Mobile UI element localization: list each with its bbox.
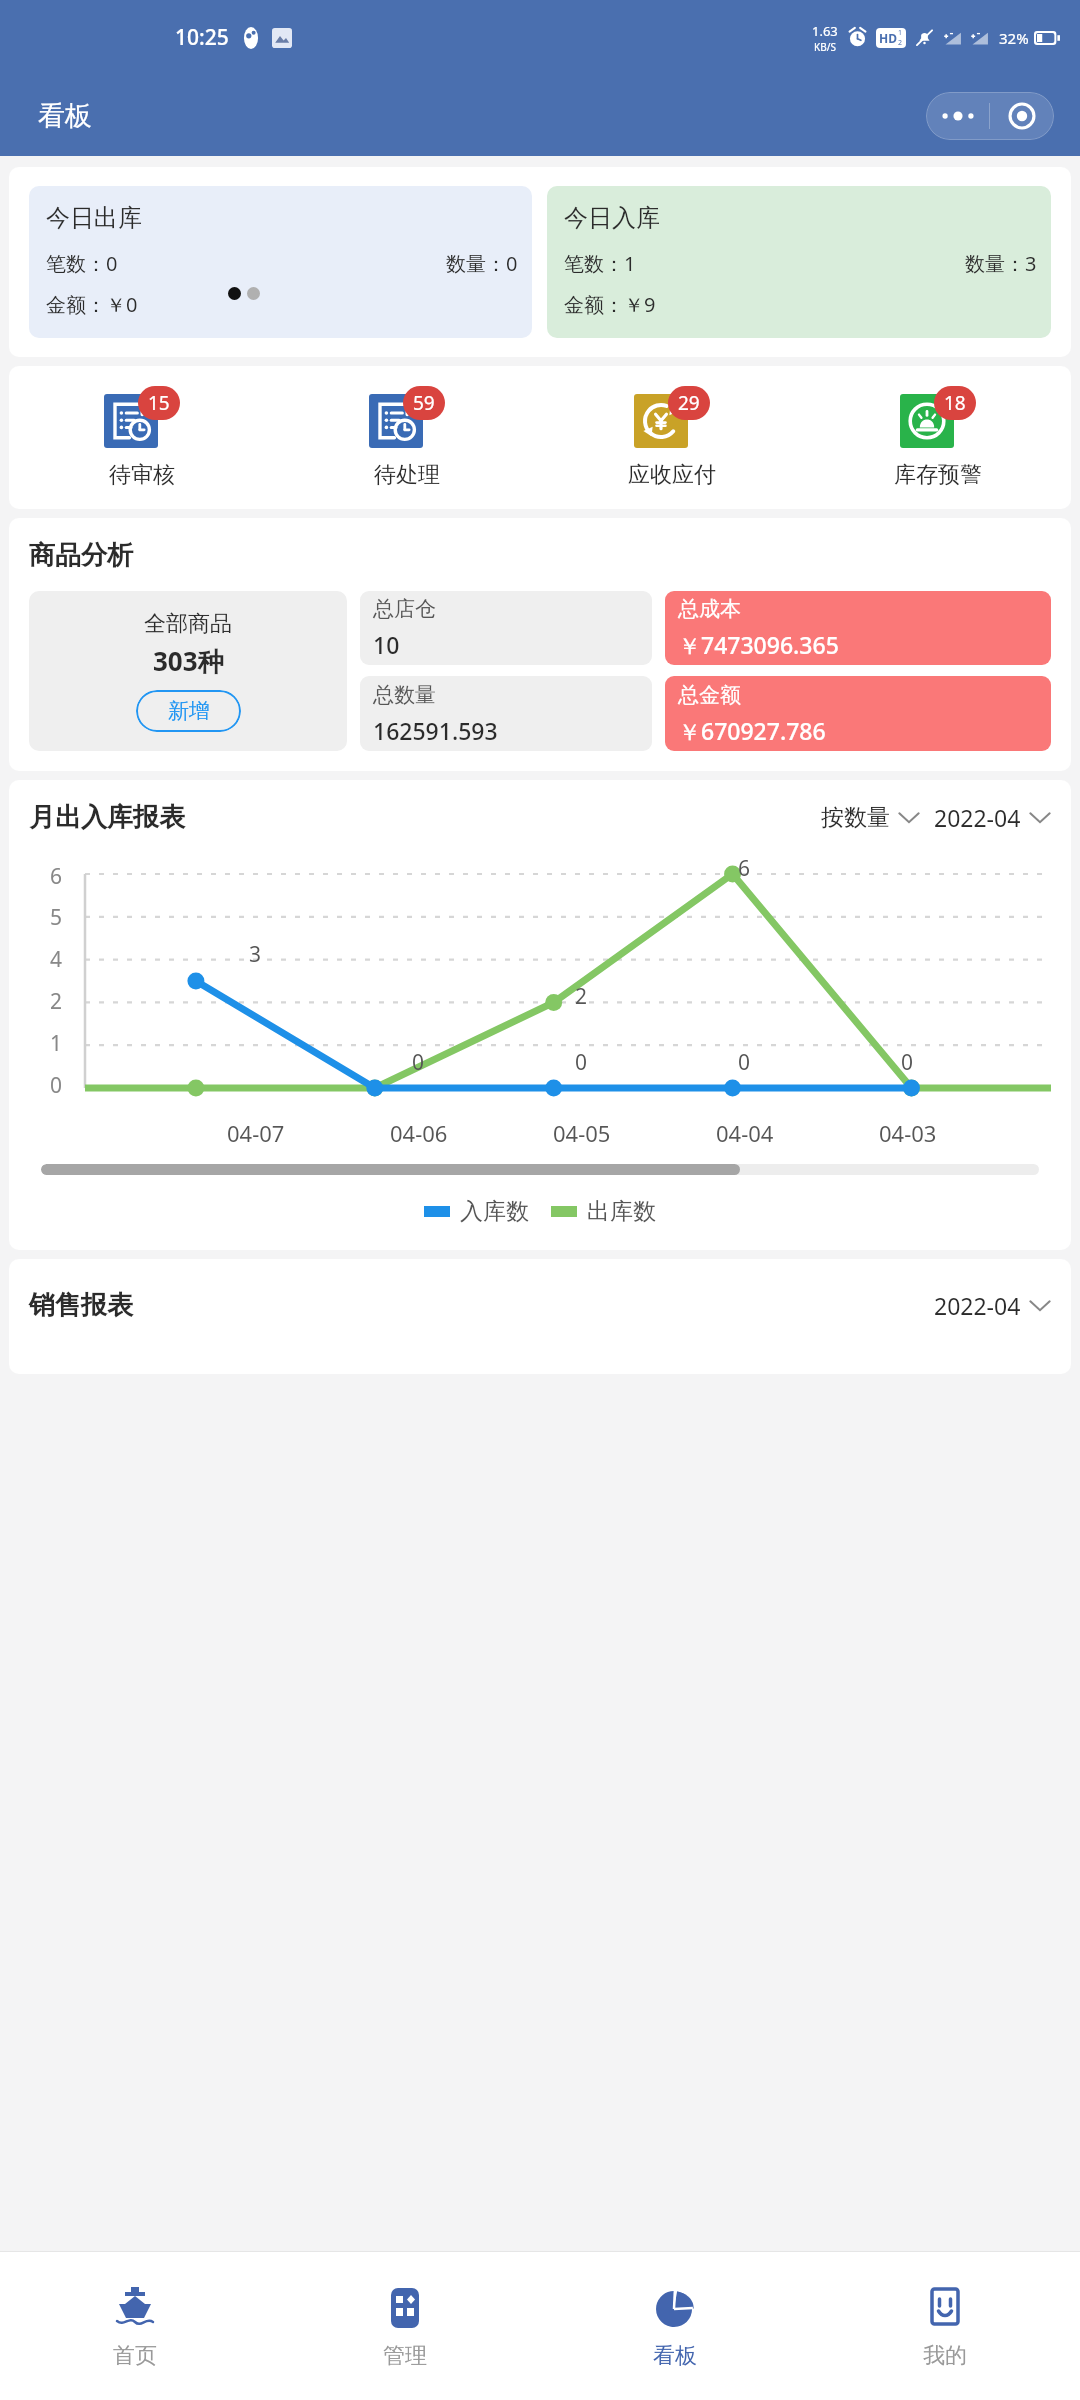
staticText: 04-04 (716, 1118, 774, 1148)
staticText: 看板 (653, 2342, 697, 2370)
staticText: 金额：￥0 (46, 291, 138, 318)
staticText: 3 (249, 940, 262, 969)
staticText: 1.63 (812, 22, 838, 40)
button[interactable]: 按数量 (821, 803, 920, 832)
staticText: 0 (575, 1048, 588, 1077)
staticText: 162591.593 (373, 715, 498, 746)
staticText: 1 (50, 1029, 63, 1058)
staticText: HD (879, 30, 897, 46)
staticText: 应收应付 (628, 461, 716, 489)
staticText: ￥670927.786 (678, 715, 826, 746)
staticText: 总店仓 (373, 596, 436, 622)
staticText: 2 (50, 987, 63, 1016)
staticText: 金额：￥9 (564, 291, 656, 318)
staticText: 笔数：0 (46, 250, 118, 277)
button[interactable]: 总成本 (665, 591, 1051, 665)
staticText: 管理 (383, 2342, 427, 2370)
button[interactable]: 今日出库 (29, 186, 532, 338)
staticText: 6 (50, 862, 63, 891)
staticText: 数量：3 (965, 250, 1037, 277)
button[interactable]: Target (990, 92, 1054, 140)
button[interactable]: 管理 (270, 2252, 540, 2400)
staticText: 04-03 (879, 1118, 937, 1148)
staticText: 0 (412, 1048, 425, 1077)
staticText: ￥7473096.365 (678, 629, 839, 660)
staticText: 总数量 (373, 682, 436, 708)
staticText: 0 (738, 1048, 751, 1077)
button[interactable]: 总数量 (360, 676, 652, 751)
staticText: 总金额 (678, 682, 741, 708)
button[interactable]: 首页 (0, 2252, 270, 2400)
staticText: 笔数：1 (564, 250, 636, 277)
staticText: 销售报表 (29, 1289, 133, 1322)
button[interactable]: 全部商品 (29, 591, 347, 751)
staticText: 303种 (153, 643, 224, 679)
staticText: 18 (944, 390, 966, 416)
staticText: 出库数 (587, 1197, 656, 1226)
staticText: 待审核 (109, 461, 175, 489)
button[interactable]: 2022-04 (934, 802, 1051, 833)
staticText: 5 (50, 903, 63, 932)
staticText: 6 (738, 854, 751, 883)
staticText: 全部商品 (144, 610, 232, 638)
staticText: 2022-04 (934, 1290, 1021, 1321)
button[interactable]: 29 (539, 386, 805, 489)
staticText: 总成本 (678, 596, 741, 622)
staticText: 04-06 (390, 1118, 448, 1148)
staticText: 新增 (168, 698, 210, 724)
staticText: 库存预警 (894, 461, 982, 489)
staticText: 15 (148, 390, 170, 416)
button[interactable]: 新增 (136, 690, 241, 732)
button[interactable]: 总金额 (665, 676, 1051, 751)
button[interactable]: 59 (274, 386, 539, 489)
staticText: 1 (898, 28, 903, 38)
staticText: 待处理 (374, 461, 440, 489)
button[interactable]: 今日入库 (547, 186, 1051, 338)
staticText: 今日出库 (46, 203, 142, 233)
staticText: 29 (678, 390, 700, 416)
button[interactable]: 我的 (810, 2252, 1080, 2400)
staticText: 首页 (113, 2342, 157, 2370)
staticText: 04-07 (227, 1118, 285, 1148)
button[interactable]: 2022-04 (934, 1290, 1051, 1321)
staticText: 10:25 (175, 23, 229, 52)
staticText: 0 (50, 1071, 63, 1100)
staticText: 4 (50, 945, 63, 974)
button[interactable]: 15 (9, 386, 274, 489)
staticText: 我的 (923, 2342, 967, 2370)
staticText: 月出入库报表 (29, 801, 185, 834)
staticText: 2022-04 (934, 802, 1021, 833)
staticText: 2 (898, 38, 903, 48)
staticText: KB/S (814, 40, 836, 54)
button[interactable]: 总店仓 (360, 591, 652, 665)
button[interactable]: More (926, 92, 989, 140)
staticText: 商品分析 (29, 539, 133, 572)
staticText: 入库数 (460, 1197, 529, 1226)
staticText: 04-05 (553, 1118, 611, 1148)
button[interactable]: 18 (805, 386, 1071, 489)
staticText: 看板 (38, 99, 92, 133)
staticText: 2 (575, 982, 588, 1011)
staticText: 59 (413, 390, 435, 416)
staticText: 数量：0 (446, 250, 518, 277)
button[interactable]: 看板 (540, 2252, 810, 2400)
staticText: 0 (901, 1048, 914, 1077)
staticText: 32% (999, 28, 1029, 48)
staticText: 今日入库 (564, 203, 660, 233)
staticText: 10 (373, 629, 400, 660)
staticText: 按数量 (821, 803, 890, 832)
